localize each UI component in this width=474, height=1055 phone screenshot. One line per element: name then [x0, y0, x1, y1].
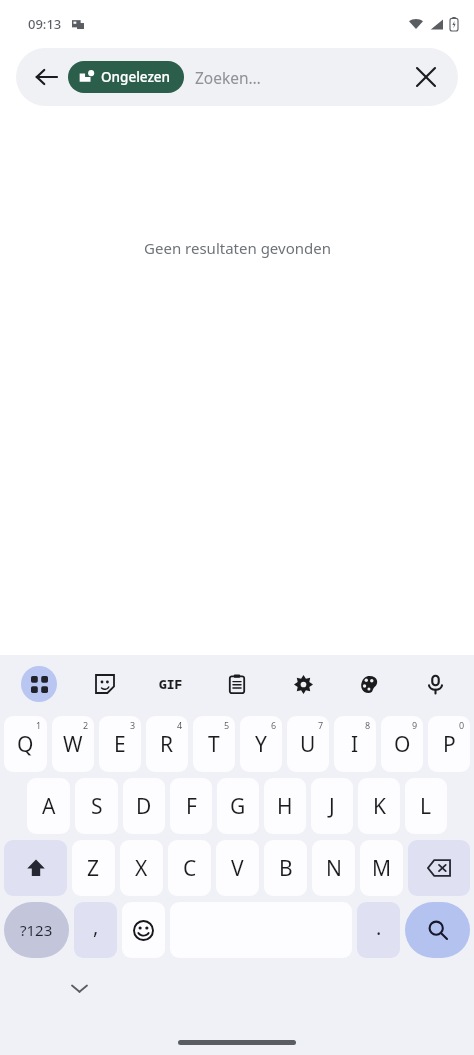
staticText: Y — [255, 730, 267, 759]
staticText: 2 — [83, 719, 89, 731]
staticText: 4 — [177, 719, 183, 731]
staticText: W — [63, 730, 83, 759]
staticText: H — [277, 792, 293, 821]
button[interactable]: H — [264, 778, 306, 834]
button[interactable]: S — [75, 778, 118, 834]
staticText: . — [376, 914, 382, 941]
staticText: D — [136, 792, 152, 821]
button[interactable]: Clipboard — [204, 655, 270, 713]
staticText: M — [372, 854, 392, 883]
button[interactable]: Stickers — [72, 655, 138, 713]
button[interactable]: B — [264, 840, 307, 896]
button[interactable]: Themes — [336, 655, 402, 713]
staticText: R — [160, 730, 174, 759]
staticText: P — [443, 730, 456, 759]
staticText: A — [42, 792, 56, 821]
staticText: K — [373, 792, 386, 821]
staticText: 6 — [271, 719, 277, 731]
button[interactable]: A — [27, 778, 70, 834]
staticText: Q — [17, 730, 34, 759]
staticText: G — [230, 792, 246, 821]
button[interactable]: G — [217, 778, 259, 834]
staticText: Zoeken… — [195, 67, 261, 88]
staticText: X — [135, 854, 148, 883]
button[interactable]: Clear search — [404, 55, 448, 99]
button[interactable]: X — [120, 840, 163, 896]
staticText: U — [300, 730, 316, 759]
button[interactable]: O — [381, 716, 423, 772]
staticText: 9 — [412, 719, 418, 731]
staticText: Geen resultaten gevonden — [144, 238, 331, 258]
button[interactable]: U — [287, 716, 329, 772]
button[interactable]: Backspace — [408, 840, 470, 896]
staticText: 7 — [318, 719, 324, 731]
button[interactable]: D — [123, 778, 165, 834]
button[interactable]: Z — [72, 840, 115, 896]
button[interactable]: C — [168, 840, 211, 896]
button[interactable]: Ongelezen — [68, 61, 184, 93]
button[interactable]: , — [74, 902, 117, 958]
button[interactable]: R — [146, 716, 188, 772]
staticText: GIF — [159, 675, 183, 693]
button[interactable]: T — [193, 716, 235, 772]
staticText: ?123 — [20, 920, 53, 940]
button[interactable]: Toolbox — [6, 655, 72, 713]
button[interactable]: Y — [240, 716, 282, 772]
staticText: 0 — [459, 719, 465, 731]
staticText: 3 — [130, 719, 136, 731]
button[interactable]: ?123 — [4, 902, 69, 958]
staticText: F — [186, 792, 197, 821]
button[interactable]: J — [311, 778, 353, 834]
button[interactable]: P — [428, 716, 470, 772]
staticText: 09:13 — [28, 15, 62, 33]
staticText: Ongelezen — [101, 68, 171, 86]
button[interactable]: Q — [4, 716, 47, 772]
button[interactable]: N — [312, 840, 355, 896]
staticText: I — [351, 730, 359, 759]
button[interactable]: Search — [405, 902, 470, 958]
staticText: , — [93, 913, 99, 940]
staticText: O — [394, 730, 411, 759]
staticText: S — [91, 792, 103, 821]
button[interactable]: . — [357, 902, 400, 958]
staticText: B — [279, 854, 293, 883]
button[interactable]: Emoji — [122, 902, 165, 958]
staticText: 5 — [224, 719, 230, 731]
button[interactable]: M — [360, 840, 403, 896]
staticText: J — [329, 792, 335, 821]
staticText: 8 — [365, 719, 371, 731]
button[interactable]: Voice input — [402, 655, 468, 713]
button[interactable]: I — [334, 716, 376, 772]
button[interactable]: E — [99, 716, 141, 772]
button[interactable]: L — [405, 778, 447, 834]
staticText: V — [231, 854, 244, 883]
staticText: C — [183, 854, 197, 883]
button[interactable]: W — [52, 716, 94, 772]
button[interactable]: Settings — [270, 655, 336, 713]
button[interactable]: GIF — [138, 655, 204, 713]
button[interactable]: K — [358, 778, 400, 834]
button[interactable]: Shift — [4, 840, 67, 896]
staticText: L — [420, 792, 432, 821]
staticText: 1 — [36, 719, 42, 731]
button[interactable]: Back — [22, 53, 70, 101]
button[interactable]: Hide keyboard — [60, 969, 98, 1007]
staticText: E — [114, 730, 126, 759]
staticText: T — [208, 730, 220, 759]
button[interactable]: F — [170, 778, 212, 834]
button[interactable]: V — [216, 840, 259, 896]
staticText: Z — [87, 854, 100, 883]
staticText: N — [326, 854, 342, 883]
